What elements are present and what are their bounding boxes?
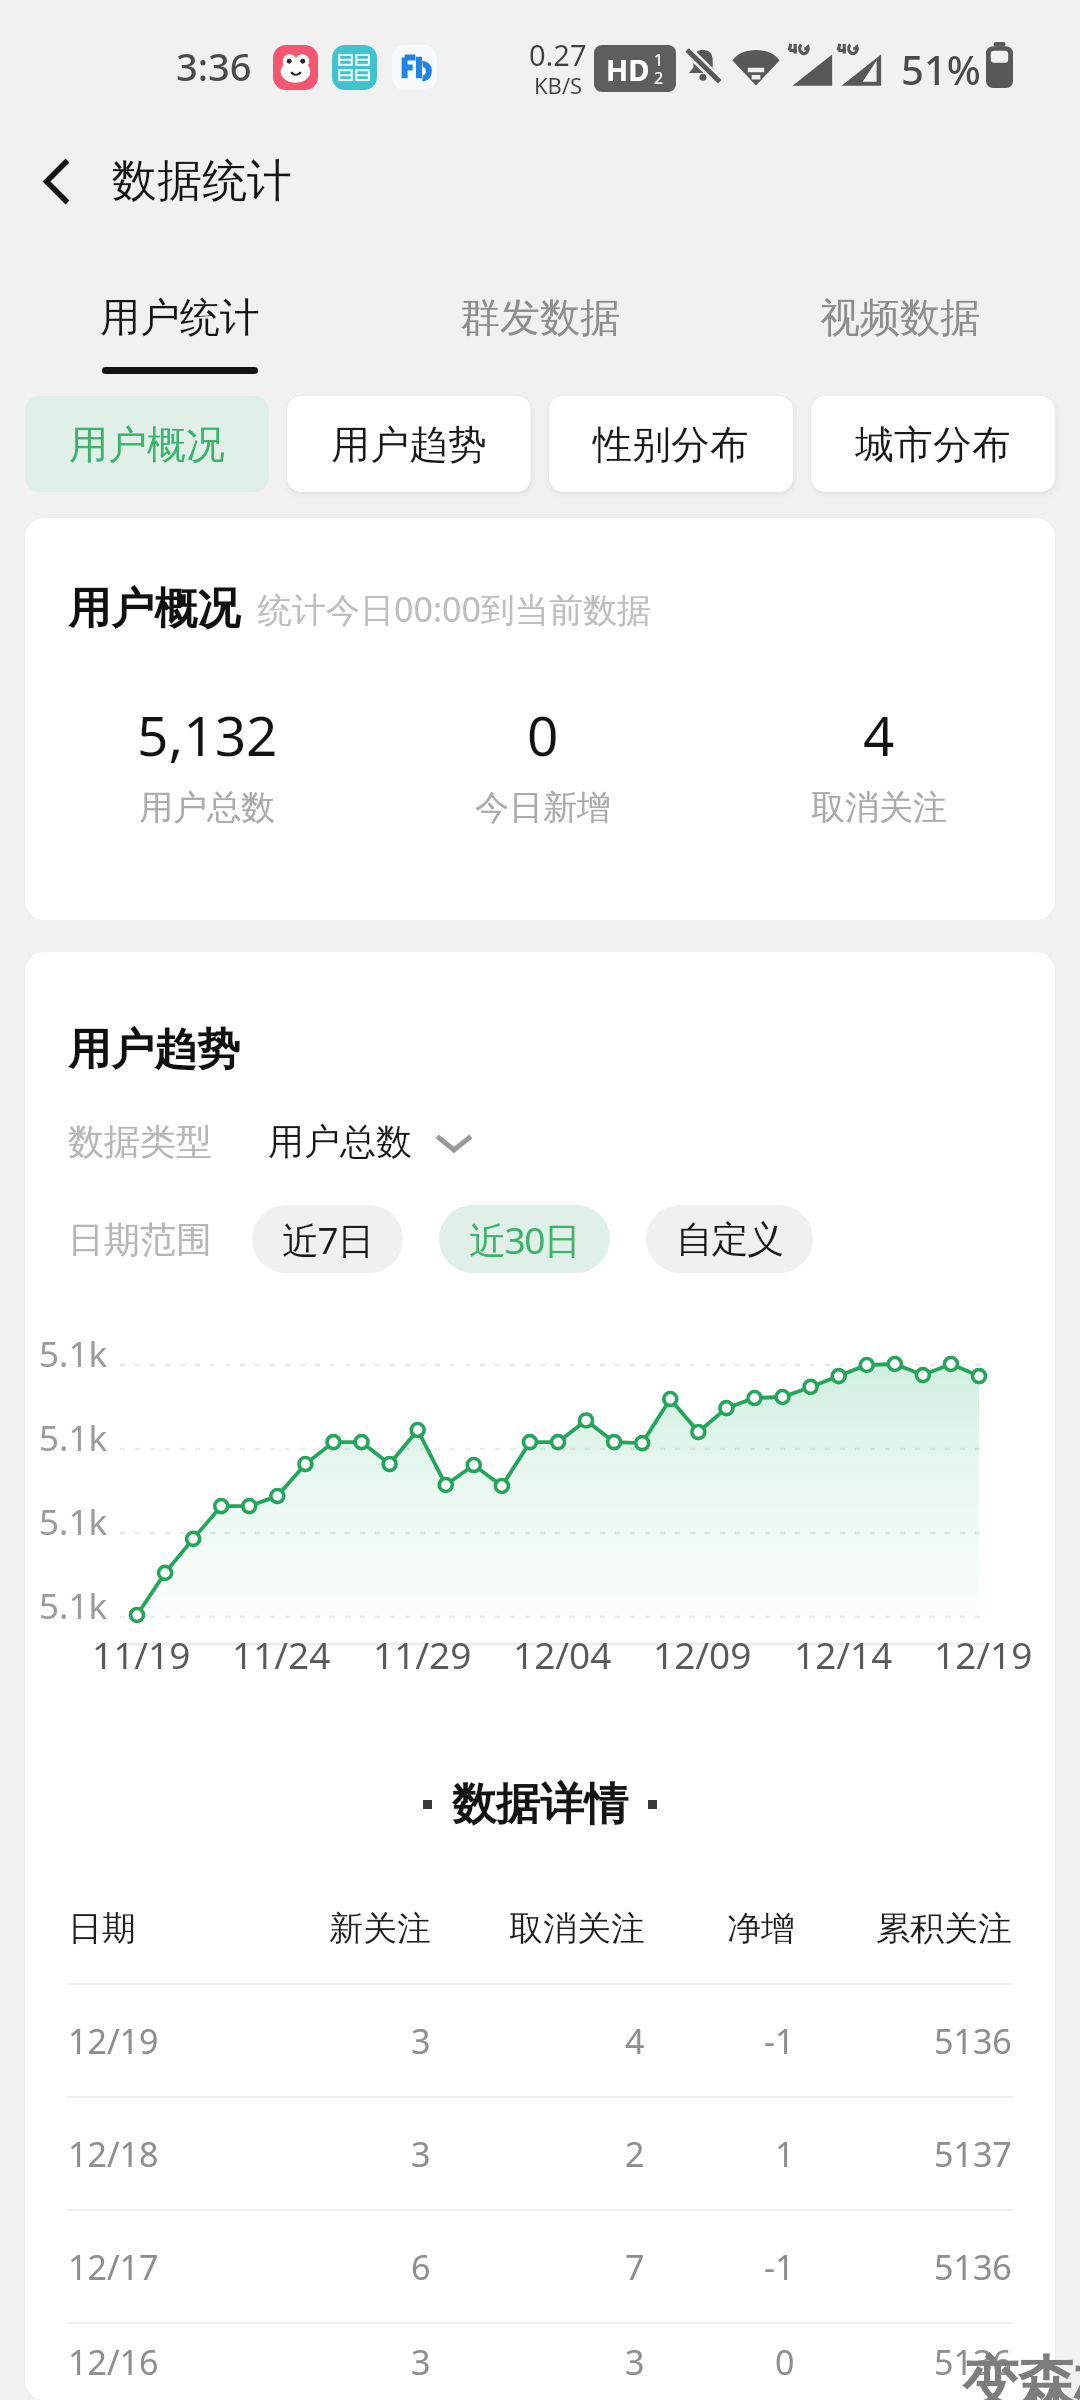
staticText: 2 (625, 2131, 645, 2177)
staticText: 2 (654, 67, 664, 89)
staticText: 取消关注 (811, 786, 947, 829)
staticText: 数据类型 (68, 1119, 212, 1164)
staticText: 12/09 (653, 1629, 752, 1679)
staticText: 0 (527, 697, 559, 772)
staticText: 12/04 (513, 1629, 612, 1679)
staticText: 今日新增 (475, 786, 611, 829)
staticText: 0.27 (529, 35, 587, 74)
button[interactable]: 自定义 (646, 1205, 813, 1273)
button[interactable]: Back (10, 134, 104, 228)
staticText: 用户趋势 (68, 1023, 240, 1077)
staticText: 3 (625, 2339, 645, 2385)
staticText: 3 (411, 2339, 431, 2385)
staticText: 5,132 (137, 697, 278, 772)
staticText: 51% (901, 42, 981, 96)
button[interactable]: 城市分布 (811, 396, 1055, 492)
staticText: 近30日 (469, 1214, 580, 1265)
staticText: 用户概况 (69, 420, 225, 469)
staticText: 11/19 (92, 1629, 191, 1679)
staticText: 用户趋势 (331, 420, 487, 469)
staticText: 3 (411, 2131, 431, 2177)
staticText: 数据详情 (452, 1777, 628, 1832)
button[interactable]: 用户概况 (25, 396, 269, 492)
staticText: 3 (411, 2018, 431, 2064)
button[interactable]: 用户趋势 (287, 396, 531, 492)
button[interactable]: 近30日 (439, 1205, 610, 1273)
staticText: 视频数据 (820, 292, 980, 342)
staticText: 3:36 (176, 40, 252, 92)
staticText: 5.1k (39, 1330, 108, 1378)
staticText: 5.1k (39, 1414, 108, 1462)
staticText: 变森格 (962, 2348, 1080, 2400)
staticText: 12/19 (68, 2018, 159, 2064)
staticText: 自定义 (676, 1216, 783, 1263)
staticText: 用户总数 (139, 786, 275, 829)
staticText: 0 (775, 2339, 795, 2385)
button[interactable]: 12/19 (25, 1985, 1055, 2096)
staticText: 用户总数 (268, 1119, 412, 1164)
button[interactable]: 群发数据 (360, 258, 720, 384)
staticText: 取消关注 (509, 1907, 645, 1947)
staticText: 5137 (934, 2131, 1012, 2177)
button[interactable]: 12/18 (25, 2098, 1055, 2209)
staticText: 4 (863, 697, 895, 772)
staticText: 12/19 (934, 1629, 1033, 1679)
staticText: 性别分布 (593, 420, 749, 469)
staticText: 6 (411, 2244, 431, 2290)
staticText: 新关注 (329, 1907, 431, 1947)
staticText: 11/24 (232, 1629, 331, 1679)
staticText: 日期 (68, 1907, 136, 1947)
staticText: 日期范围 (68, 1217, 212, 1262)
staticText: 5.1k (39, 1498, 108, 1546)
staticText: 用户统计 (100, 292, 260, 342)
staticText: 累积关注 (876, 1907, 1012, 1947)
staticText: -1 (764, 2244, 795, 2290)
staticText: 5.1k (39, 1582, 108, 1630)
button[interactable]: 用户总数 (268, 1119, 474, 1164)
button[interactable]: 视频数据 (720, 258, 1080, 384)
staticText: 5136 (934, 2018, 1012, 2064)
staticText: 12/18 (68, 2131, 159, 2177)
button[interactable]: 性别分布 (549, 396, 793, 492)
staticText: 4 (625, 2018, 645, 2064)
staticText: 12/17 (68, 2244, 159, 2290)
staticText: -1 (764, 2018, 795, 2064)
staticText: 数据统计 (112, 153, 292, 210)
staticText: 1 (775, 2131, 795, 2177)
staticText: 1 (654, 49, 664, 71)
staticText: 城市分布 (855, 420, 1011, 469)
staticText: 用户概况 (68, 582, 240, 636)
staticText: HD (606, 50, 650, 89)
staticText: 统计今日00:00到当前数据 (258, 586, 651, 632)
staticText: 11/29 (373, 1629, 472, 1679)
button[interactable]: 12/16 (25, 2324, 1055, 2400)
button[interactable]: 用户统计 (0, 258, 360, 384)
staticText: 净增 (727, 1907, 795, 1947)
staticText: 5136 (934, 2339, 1012, 2385)
staticText: 12/16 (68, 2339, 159, 2385)
button[interactable]: 12/17 (25, 2211, 1055, 2322)
staticText: 群发数据 (460, 292, 620, 342)
staticText: 近7日 (282, 1214, 373, 1265)
staticText: 5136 (934, 2244, 1012, 2290)
button[interactable]: 近7日 (252, 1205, 403, 1273)
staticText: KB/S (534, 70, 583, 100)
staticText: 12/14 (794, 1629, 893, 1679)
staticText: 7 (625, 2244, 645, 2290)
